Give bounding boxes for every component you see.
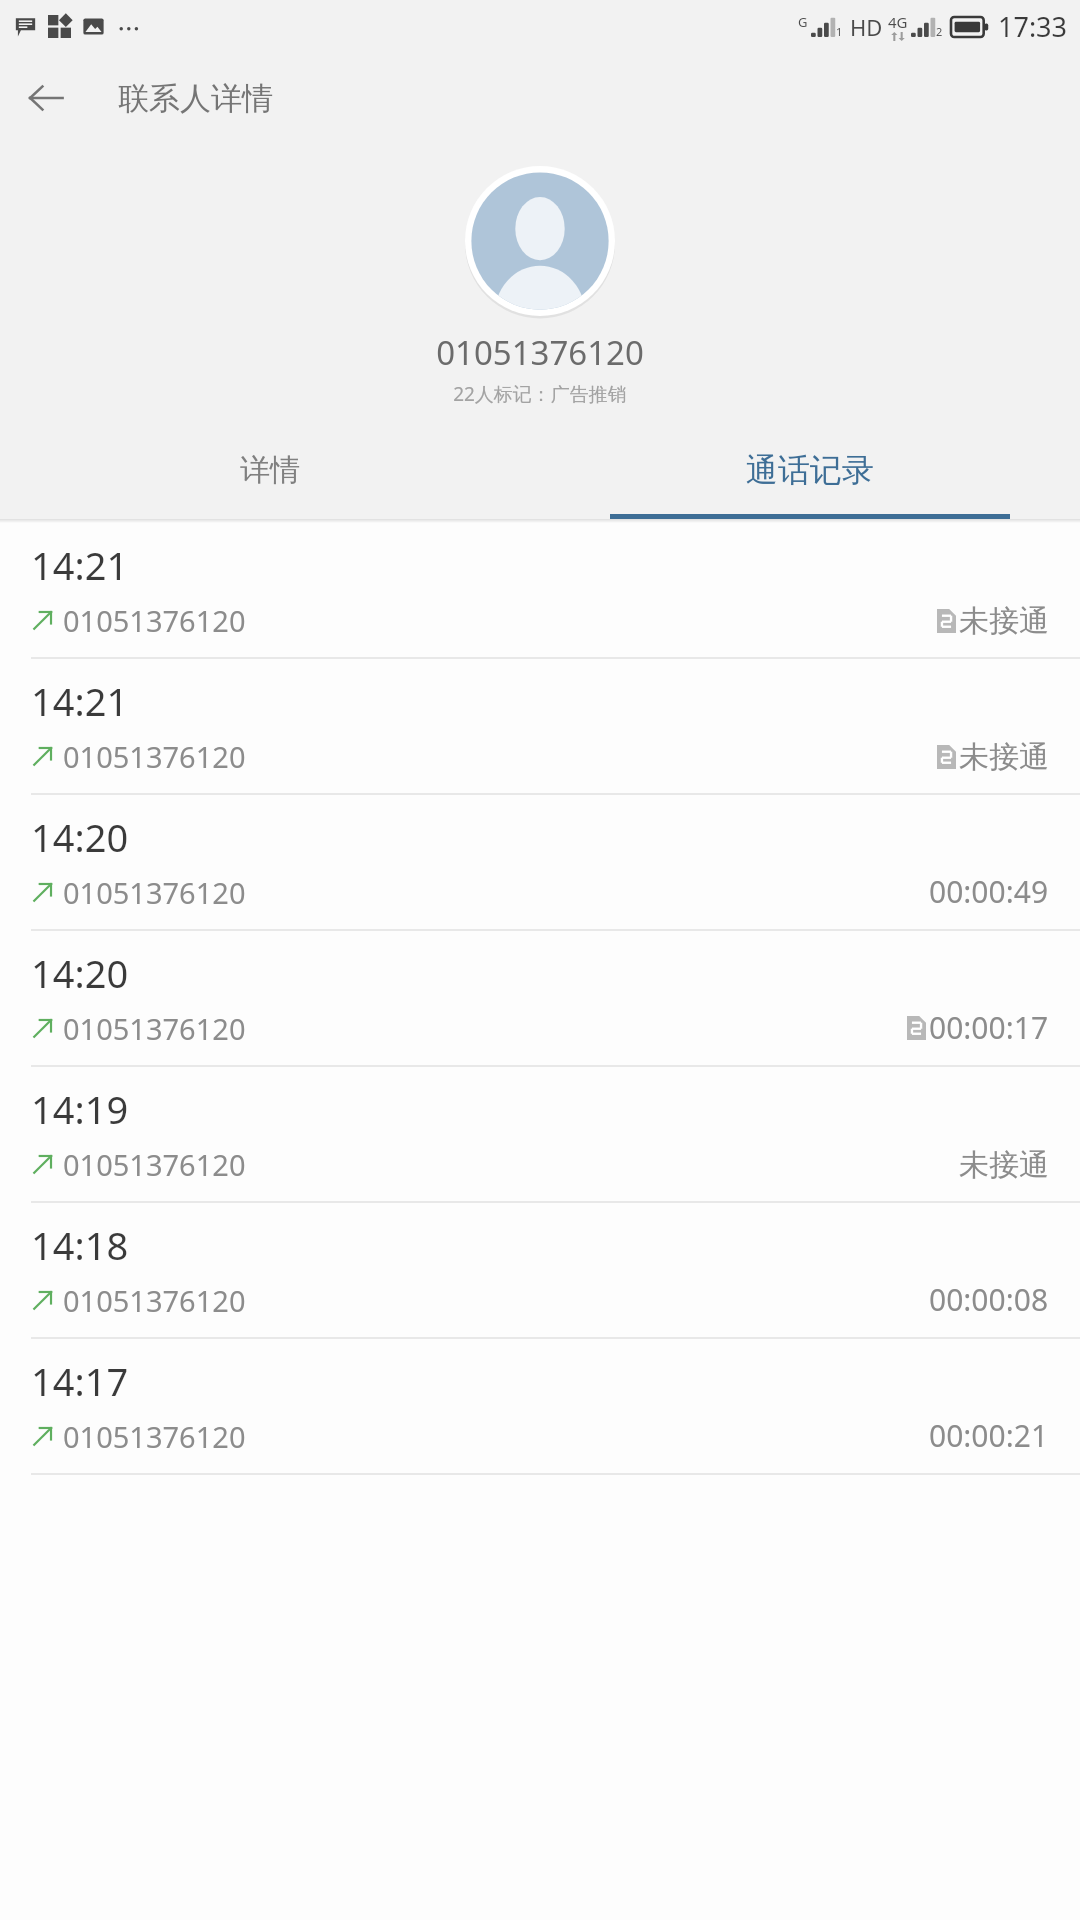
staticText: 详情 xyxy=(240,451,300,489)
staticText: 未接通 xyxy=(959,1146,1049,1184)
staticText: 通话记录 xyxy=(746,450,874,490)
staticText: 14:18 xyxy=(31,1219,129,1271)
staticText: 未接通 xyxy=(959,738,1049,776)
button[interactable]: 14:21 xyxy=(0,659,1080,795)
staticText: 联系人详情 xyxy=(118,79,273,118)
staticText: 01051376120 xyxy=(63,1281,246,1320)
staticText: 22人标记：广告推销 xyxy=(0,381,1080,407)
button[interactable]: 14:17 xyxy=(0,1339,1080,1475)
staticText: 2 xyxy=(936,24,943,39)
staticText: 14:17 xyxy=(31,1355,129,1407)
staticText: 17:33 xyxy=(998,8,1068,45)
button[interactable]: 14:20 xyxy=(0,931,1080,1067)
staticText: 01051376120 xyxy=(63,1145,246,1184)
staticText: G xyxy=(798,13,808,31)
staticText: 00:00:17 xyxy=(929,1007,1049,1048)
staticText: 1 xyxy=(836,24,843,39)
button[interactable]: Back xyxy=(0,52,92,144)
button[interactable]: 详情 xyxy=(0,421,540,519)
staticText: 14:20 xyxy=(31,811,129,863)
staticText: 00:00:49 xyxy=(929,871,1049,912)
staticText: HD xyxy=(850,12,883,42)
staticText: 14:20 xyxy=(31,947,129,999)
staticText: 14:21 xyxy=(31,539,129,591)
staticText: 00:00:08 xyxy=(929,1279,1049,1320)
staticText: 00:00:21 xyxy=(929,1415,1049,1456)
staticText: 未接通 xyxy=(959,602,1049,640)
button[interactable]: 14:20 xyxy=(0,795,1080,931)
staticText: 01051376120 xyxy=(0,330,1080,375)
staticText: 01051376120 xyxy=(63,737,246,776)
button[interactable]: 14:21 xyxy=(0,523,1080,659)
button[interactable]: 14:18 xyxy=(0,1203,1080,1339)
staticText: 4G xyxy=(888,12,908,32)
staticText: 01051376120 xyxy=(63,1417,246,1456)
staticText: 14:19 xyxy=(31,1083,129,1135)
staticText: 01051376120 xyxy=(63,601,246,640)
staticText: 01051376120 xyxy=(63,873,246,912)
staticText: 14:21 xyxy=(31,675,129,727)
staticText: 01051376120 xyxy=(63,1009,246,1048)
button[interactable]: 14:19 xyxy=(0,1067,1080,1203)
button[interactable]: 通话记录 xyxy=(540,421,1080,519)
